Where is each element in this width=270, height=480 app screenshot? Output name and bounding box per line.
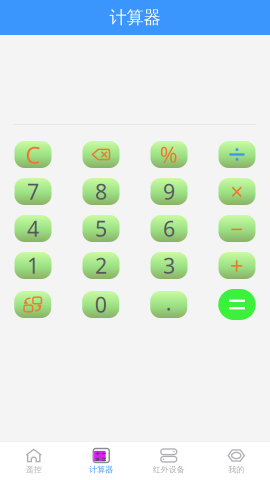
staticText: 计算器 — [109, 7, 160, 28]
button[interactable]: 9 — [150, 178, 187, 205]
button[interactable]: Minus — [218, 215, 255, 242]
staticText: 1 — [27, 251, 39, 280]
staticText: − — [230, 213, 243, 243]
staticText: 4 — [27, 214, 39, 243]
button[interactable]: 计算器 — [67, 442, 135, 480]
staticText: 0 — [95, 290, 107, 319]
button[interactable]: Clear — [14, 141, 51, 168]
staticText: C — [25, 139, 40, 170]
staticText: 3 — [163, 251, 175, 280]
staticText: 遥控 — [26, 465, 42, 474]
staticText: % — [160, 140, 178, 169]
button[interactable]: Multiply — [218, 178, 255, 205]
button[interactable]: Decimal point — [150, 291, 187, 318]
staticText: 7 — [27, 177, 39, 206]
staticText: 8 — [95, 177, 107, 206]
button[interactable]: 5 — [82, 215, 119, 242]
button[interactable]: Plus — [218, 252, 255, 279]
button[interactable]: 8 — [82, 178, 119, 205]
button[interactable]: 红外设备 — [135, 442, 202, 480]
button[interactable]: 遥控 — [0, 442, 67, 480]
button[interactable]: 2 — [82, 252, 119, 279]
button[interactable]: 3 — [150, 252, 187, 279]
button[interactable]: 7 — [14, 178, 51, 205]
staticText: 5 — [95, 214, 107, 243]
button[interactable]: Equals — [218, 289, 256, 320]
staticText: 6 — [163, 214, 175, 243]
staticText: 9 — [163, 177, 175, 206]
button[interactable]: 1 — [14, 252, 51, 279]
staticText: 我的 — [228, 465, 244, 474]
button[interactable]: Delete — [82, 141, 119, 168]
staticText: . — [166, 288, 172, 317]
button[interactable]: Convert — [14, 291, 51, 318]
button[interactable]: Percent — [150, 141, 187, 168]
staticText: + — [230, 250, 244, 281]
button[interactable]: 0 — [82, 291, 119, 318]
button[interactable]: 4 — [14, 215, 51, 242]
staticText: 红外设备 — [153, 465, 185, 474]
staticText: × — [230, 176, 243, 206]
button[interactable]: 6 — [150, 215, 187, 242]
button[interactable]: 我的 — [202, 442, 270, 480]
staticText: 计算器 — [89, 465, 113, 474]
staticText: 2 — [95, 251, 107, 280]
button[interactable]: Divide — [218, 141, 255, 168]
